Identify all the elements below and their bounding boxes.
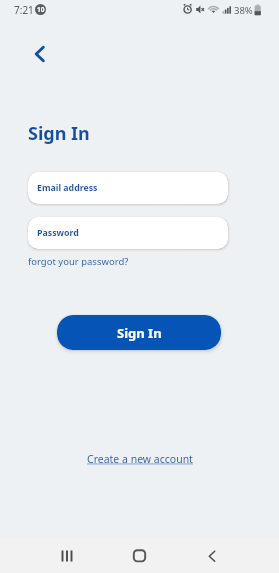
button[interactable]	[22, 38, 54, 70]
button[interactable]: forgot your password?	[28, 255, 129, 268]
staticText: 10	[37, 5, 45, 14]
button[interactable]: Create a new account	[87, 452, 193, 466]
staticText: Email address	[37, 182, 98, 194]
staticText: Sign In	[117, 324, 162, 342]
staticText: Create a new account	[87, 452, 193, 466]
button[interactable]: Sign In	[57, 315, 221, 350]
button[interactable]	[47, 539, 87, 573]
button[interactable]: Email address	[28, 172, 228, 204]
button[interactable]	[192, 539, 232, 573]
staticText: Sign In	[28, 121, 90, 146]
staticText: Password	[37, 227, 79, 239]
staticText: forgot your password?	[28, 255, 129, 268]
staticText: 38%	[234, 4, 253, 17]
button[interactable]	[119, 539, 159, 573]
staticText: 7:21	[14, 3, 34, 17]
button[interactable]: Password	[28, 217, 228, 249]
